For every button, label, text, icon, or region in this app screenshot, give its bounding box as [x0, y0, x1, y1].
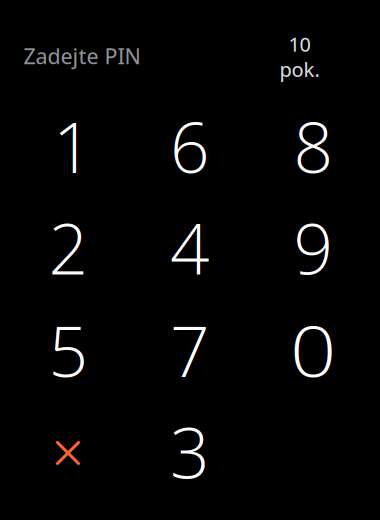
- staticText: Zadejte PIN: [23, 41, 140, 71]
- staticText: 9: [293, 200, 333, 295]
- staticText: 8: [293, 99, 333, 193]
- staticText: 4: [170, 200, 210, 295]
- button[interactable]: 4: [131, 197, 249, 297]
- staticText: 10: [288, 30, 310, 57]
- button[interactable]: 0: [254, 300, 372, 400]
- button[interactable]: Delete: [9, 403, 127, 503]
- staticText: 3: [170, 404, 210, 499]
- staticText: pok.: [279, 55, 319, 83]
- button[interactable]: 5: [9, 300, 127, 400]
- button[interactable]: 2: [9, 197, 127, 297]
- staticText: 1: [53, 99, 93, 193]
- button[interactable]: 6: [131, 96, 249, 196]
- button[interactable]: 9: [254, 197, 372, 297]
- button[interactable]: 7: [131, 300, 249, 400]
- staticText: 2: [48, 200, 88, 295]
- button[interactable]: 8: [254, 96, 372, 196]
- staticText: 5: [48, 303, 88, 397]
- staticText: 7: [170, 303, 210, 397]
- staticText: 0: [293, 303, 333, 397]
- button[interactable]: 3: [131, 401, 249, 501]
- staticText: 6: [170, 99, 210, 193]
- button[interactable]: 1: [14, 96, 132, 196]
